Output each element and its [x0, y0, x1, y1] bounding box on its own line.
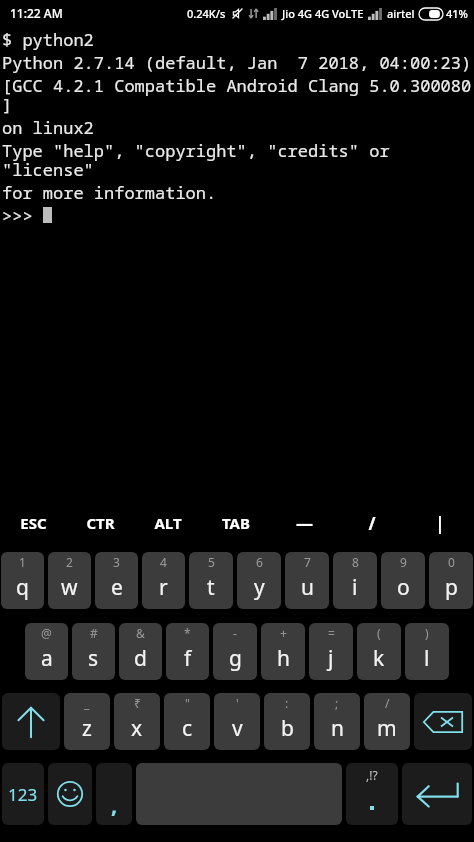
button[interactable]: 1 — [1, 552, 44, 609]
staticText: ; — [335, 695, 339, 711]
staticText: / — [368, 512, 376, 535]
button[interactable]: 2 — [48, 552, 91, 609]
button[interactable]: , — [96, 763, 132, 825]
button[interactable]: Shift — [2, 693, 60, 750]
staticText: - — [233, 625, 237, 641]
staticText: 123 — [8, 783, 38, 806]
staticText: [GCC 4.2.1 Compatible Android Clang 5.0.… — [2, 74, 474, 116]
staticText: 41% — [446, 6, 468, 21]
staticText: 4 — [160, 554, 167, 570]
staticText: on linux2 — [2, 116, 94, 139]
staticText: ALT — [154, 513, 182, 533]
staticText: Python 2.7.14 (default, Jan 7 2018, 04:0… — [2, 51, 472, 74]
staticText: 5 — [208, 554, 215, 570]
staticText: # — [90, 625, 98, 641]
staticText: ESC — [20, 513, 47, 533]
staticText: 2 — [66, 554, 73, 570]
staticText: o — [397, 573, 410, 602]
staticText: 0.24K/s — [187, 6, 226, 21]
button[interactable]: - — [213, 623, 257, 680]
staticText: s — [88, 644, 99, 673]
staticText: 6 — [256, 554, 263, 570]
button[interactable]: TAB — [202, 494, 270, 552]
staticText: y — [254, 573, 265, 602]
button[interactable]: ₹ — [114, 693, 160, 750]
button[interactable]: ESC — [0, 494, 67, 552]
staticText: u — [301, 573, 314, 602]
button[interactable]: + — [261, 623, 305, 680]
staticText: , — [111, 789, 118, 819]
staticText: Type "help", "copyright", "credits" or "… — [2, 139, 474, 181]
staticText: Jio 4G 4G VoLTE — [282, 6, 364, 21]
button[interactable]: ; — [314, 693, 360, 750]
staticText: m — [377, 714, 397, 743]
button[interactable]: / — [338, 494, 406, 552]
staticText: e — [111, 573, 123, 602]
button[interactable]: Enter — [402, 763, 472, 825]
button[interactable]: 0 — [429, 552, 473, 609]
staticText: n — [331, 714, 344, 743]
staticText: w — [61, 573, 78, 602]
staticText: — — [296, 512, 313, 535]
staticText: : — [285, 695, 289, 711]
staticText: >>> — [2, 204, 43, 227]
button[interactable]: / — [364, 693, 410, 750]
staticText: _ — [84, 695, 90, 711]
staticText: z — [82, 714, 92, 743]
staticText: ' — [236, 695, 239, 711]
button[interactable]: 8 — [333, 552, 377, 609]
button[interactable]: _ — [64, 693, 110, 750]
button[interactable]: @ — [25, 623, 68, 680]
button[interactable]: | — [406, 494, 474, 552]
staticText: 1 — [19, 554, 26, 570]
staticText: 7 — [304, 554, 311, 570]
button[interactable]: : — [264, 693, 310, 750]
button[interactable]: ' — [214, 693, 260, 750]
button[interactable]: 123 — [2, 763, 44, 825]
button[interactable]: * — [166, 623, 209, 680]
staticText: ( — [377, 625, 381, 641]
staticText: airtel — [387, 6, 415, 21]
staticText: c — [182, 714, 193, 743]
button[interactable]: — — [270, 494, 338, 552]
staticText: t — [207, 573, 215, 602]
staticText: ) — [425, 625, 429, 641]
button[interactable]: & — [119, 623, 162, 680]
button[interactable]: ,!? — [346, 763, 398, 825]
staticText: TAB — [222, 513, 250, 533]
staticText: for more information. — [2, 181, 217, 204]
button[interactable]: 3 — [95, 552, 138, 609]
staticText: & — [136, 625, 145, 641]
button[interactable]: ALT — [134, 494, 202, 552]
button[interactable]: 7 — [285, 552, 329, 609]
staticText: = — [328, 625, 335, 641]
staticText: $ python2 — [2, 28, 94, 51]
button[interactable]: Emoji — [48, 763, 92, 825]
staticText: a — [41, 644, 53, 673]
staticText: v — [232, 714, 243, 743]
staticText: ₹ — [134, 695, 141, 711]
button[interactable]: CTR — [67, 494, 134, 552]
staticText: * — [184, 625, 191, 641]
staticText: + — [280, 625, 287, 641]
button[interactable]: 6 — [237, 552, 281, 609]
button[interactable]: 5 — [189, 552, 233, 609]
staticText: k — [373, 644, 385, 673]
staticText: l — [424, 644, 430, 673]
button[interactable]: 4 — [142, 552, 185, 609]
button[interactable]: # — [72, 623, 115, 680]
button[interactable]: " — [164, 693, 210, 750]
staticText: 0 — [448, 554, 455, 570]
staticText: r — [159, 573, 168, 602]
button[interactable]: 9 — [381, 552, 425, 609]
staticText: h — [277, 644, 290, 673]
staticText: g — [229, 644, 242, 673]
staticText: " — [185, 695, 190, 711]
button[interactable]: ) — [405, 623, 449, 680]
button[interactable]: ( — [357, 623, 401, 680]
staticText: @ — [41, 625, 52, 641]
button[interactable]: Backspace — [414, 693, 472, 750]
button[interactable]: = — [309, 623, 353, 680]
staticText: q — [16, 573, 29, 602]
